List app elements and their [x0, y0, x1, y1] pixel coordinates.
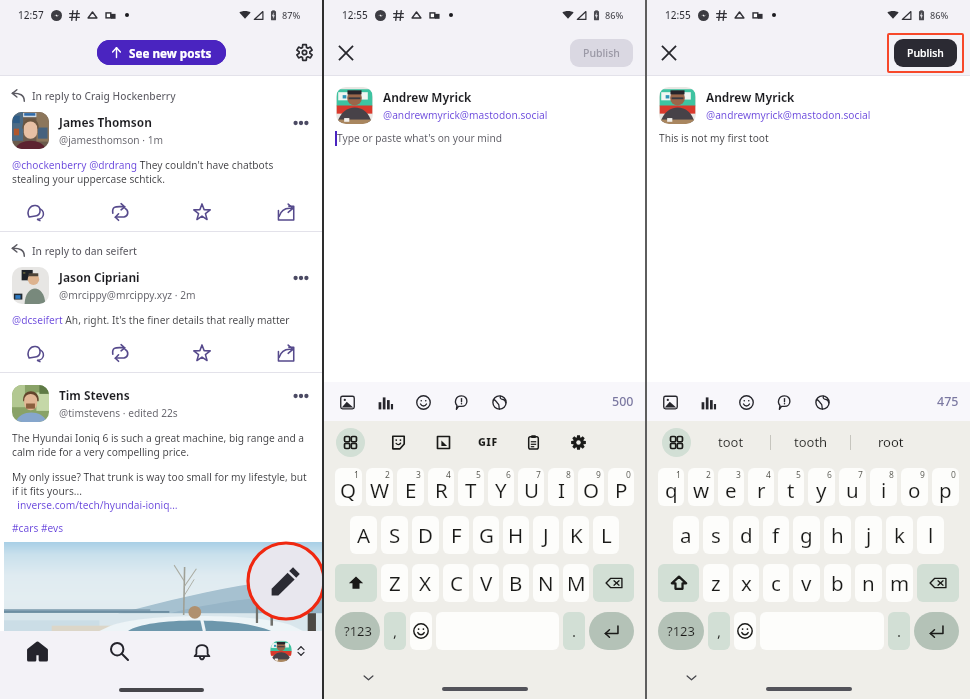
- button[interactable]: Z: [381, 564, 408, 602]
- button[interactable]: f: [763, 516, 789, 554]
- button[interactable]: t: [778, 468, 804, 506]
- button[interactable]: k: [886, 516, 913, 554]
- button[interactable]: M: [563, 564, 589, 602]
- button[interactable]: z: [703, 564, 729, 602]
- button[interactable]: D: [412, 516, 439, 554]
- button[interactable]: .: [563, 612, 585, 650]
- button[interactable]: Stickers: [386, 430, 410, 454]
- button[interactable]: m: [886, 564, 913, 602]
- button[interactable]: h: [824, 516, 851, 554]
- button[interactable]: Favourite: [181, 200, 223, 224]
- button[interactable]: q: [658, 468, 684, 506]
- button[interactable]: Backspace: [917, 564, 959, 602]
- button[interactable]: n: [855, 564, 882, 602]
- button[interactable]: Home: [15, 631, 59, 671]
- button[interactable]: Q: [335, 468, 362, 506]
- button[interactable]: B: [503, 564, 529, 602]
- button[interactable]: ,: [384, 612, 406, 650]
- button[interactable]: Boost: [99, 200, 141, 224]
- button[interactable]: Notifications: [180, 631, 224, 671]
- button[interactable]: Enter: [589, 612, 634, 650]
- button[interactable]: L: [593, 516, 619, 554]
- button[interactable]: a: [673, 516, 699, 554]
- button[interactable]: Favourite: [181, 341, 223, 365]
- button[interactable]: i: [870, 468, 897, 506]
- button[interactable]: Backspace: [593, 564, 634, 602]
- button[interactable]: ?123: [335, 612, 380, 650]
- button[interactable]: c: [763, 564, 789, 602]
- button[interactable]: d: [733, 516, 759, 554]
- button[interactable]: u: [839, 468, 866, 506]
- button[interactable]: Poll: [697, 391, 719, 413]
- button[interactable]: K: [563, 516, 589, 554]
- button[interactable]: Enter: [914, 612, 959, 650]
- button[interactable]: Visibility: [488, 391, 510, 413]
- button[interactable]: Hide keyboard: [682, 668, 700, 686]
- button[interactable]: P: [608, 468, 634, 506]
- button[interactable]: S: [381, 516, 408, 554]
- button[interactable]: j: [855, 516, 882, 554]
- button[interactable]: Reply: [15, 341, 57, 365]
- button[interactable]: Content warning: [450, 391, 472, 413]
- button[interactable]: g: [793, 516, 820, 554]
- button[interactable]: y: [808, 468, 835, 506]
- button[interactable]: Content warning: [773, 391, 795, 413]
- button[interactable]: Publish: [570, 39, 633, 67]
- button[interactable]: More options: [288, 110, 314, 136]
- button[interactable]: Y: [488, 468, 514, 506]
- button[interactable]: Handwriting: [431, 430, 455, 454]
- button[interactable]: x: [733, 564, 759, 602]
- button[interactable]: Share: [265, 341, 307, 365]
- button[interactable]: T: [458, 468, 484, 506]
- button[interactable]: root: [851, 421, 930, 463]
- button[interactable]: tooth: [771, 421, 850, 463]
- button[interactable]: C: [443, 564, 469, 602]
- button[interactable]: Close: [653, 37, 685, 69]
- button[interactable]: Emoji: [735, 391, 757, 413]
- button[interactable]: l: [917, 516, 944, 554]
- button[interactable]: w: [688, 468, 714, 506]
- button[interactable]: Close: [330, 37, 362, 69]
- button[interactable]: o: [901, 468, 928, 506]
- button[interactable]: I: [548, 468, 574, 506]
- button[interactable]: toot: [691, 421, 770, 463]
- button[interactable]: E: [397, 468, 424, 506]
- button[interactable]: Emoji: [412, 391, 434, 413]
- button[interactable]: Share: [265, 200, 307, 224]
- button[interactable]: Toolbar: [662, 428, 691, 457]
- button[interactable]: Visibility: [811, 391, 833, 413]
- button[interactable]: J: [533, 516, 559, 554]
- button[interactable]: U: [518, 468, 544, 506]
- button[interactable]: ,: [708, 612, 730, 650]
- button[interactable]: Search: [97, 631, 141, 671]
- button[interactable]: Clipboard: [521, 430, 545, 454]
- button[interactable]: V: [473, 564, 499, 602]
- button[interactable]: GIF: [476, 430, 500, 454]
- button[interactable]: Hide keyboard: [359, 668, 377, 686]
- button[interactable]: X: [412, 564, 439, 602]
- button[interactable]: Profile: [270, 631, 316, 671]
- button[interactable]: r: [748, 468, 774, 506]
- button[interactable]: Add image: [336, 391, 358, 413]
- button[interactable]: Compose new post: [246, 541, 326, 621]
- button[interactable]: .: [888, 612, 910, 650]
- button[interactable]: G: [473, 516, 499, 554]
- button[interactable]: Boost: [99, 341, 141, 365]
- button[interactable]: More options: [288, 383, 314, 409]
- button[interactable]: p: [932, 468, 959, 506]
- button[interactable]: Keyboard settings: [566, 430, 590, 454]
- button[interactable]: Shift: [335, 564, 377, 602]
- button[interactable]: v: [793, 564, 820, 602]
- button[interactable]: More options: [288, 265, 314, 291]
- button[interactable]: b: [824, 564, 851, 602]
- button[interactable]: N: [533, 564, 559, 602]
- button[interactable]: R: [428, 468, 454, 506]
- button[interactable]: Poll: [374, 391, 396, 413]
- button[interactable]: ?123: [658, 612, 704, 650]
- button[interactable]: Reply: [15, 200, 57, 224]
- button[interactable]: W: [366, 468, 393, 506]
- button[interactable]: Toolbar: [336, 428, 365, 457]
- button[interactable]: H: [503, 516, 529, 554]
